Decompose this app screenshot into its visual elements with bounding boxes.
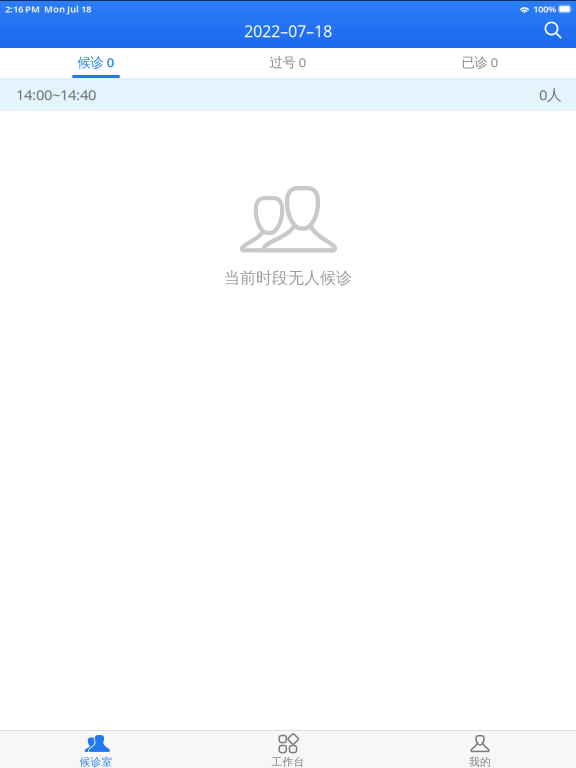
staticText: 我的 [469, 755, 491, 768]
staticText: 2:16 PM [5, 3, 40, 15]
button[interactable]: 工作台 [192, 731, 384, 768]
staticText: 已诊 0 [461, 53, 498, 71]
button[interactable]: 候诊 0 [0, 48, 192, 78]
staticText: Mon Jul 18 [44, 3, 91, 15]
staticText: 14:00~14:40 [16, 85, 96, 104]
staticText: 2022–07–18 [244, 20, 332, 42]
button[interactable]: 候诊室 [0, 731, 192, 768]
button[interactable]: 我的 [384, 731, 576, 768]
staticText: 候诊 0 [77, 53, 114, 71]
staticText: 0人 [539, 85, 562, 104]
button[interactable]: 已诊 0 [384, 48, 576, 78]
button[interactable]: Search [537, 16, 571, 46]
staticText: 候诊室 [79, 755, 112, 768]
staticText: 当前时段无人候诊 [224, 268, 352, 288]
staticText: 过号 0 [269, 53, 306, 71]
staticText: 100% [533, 3, 556, 15]
button[interactable]: 过号 0 [192, 48, 384, 78]
staticText: 工作台 [271, 755, 304, 768]
